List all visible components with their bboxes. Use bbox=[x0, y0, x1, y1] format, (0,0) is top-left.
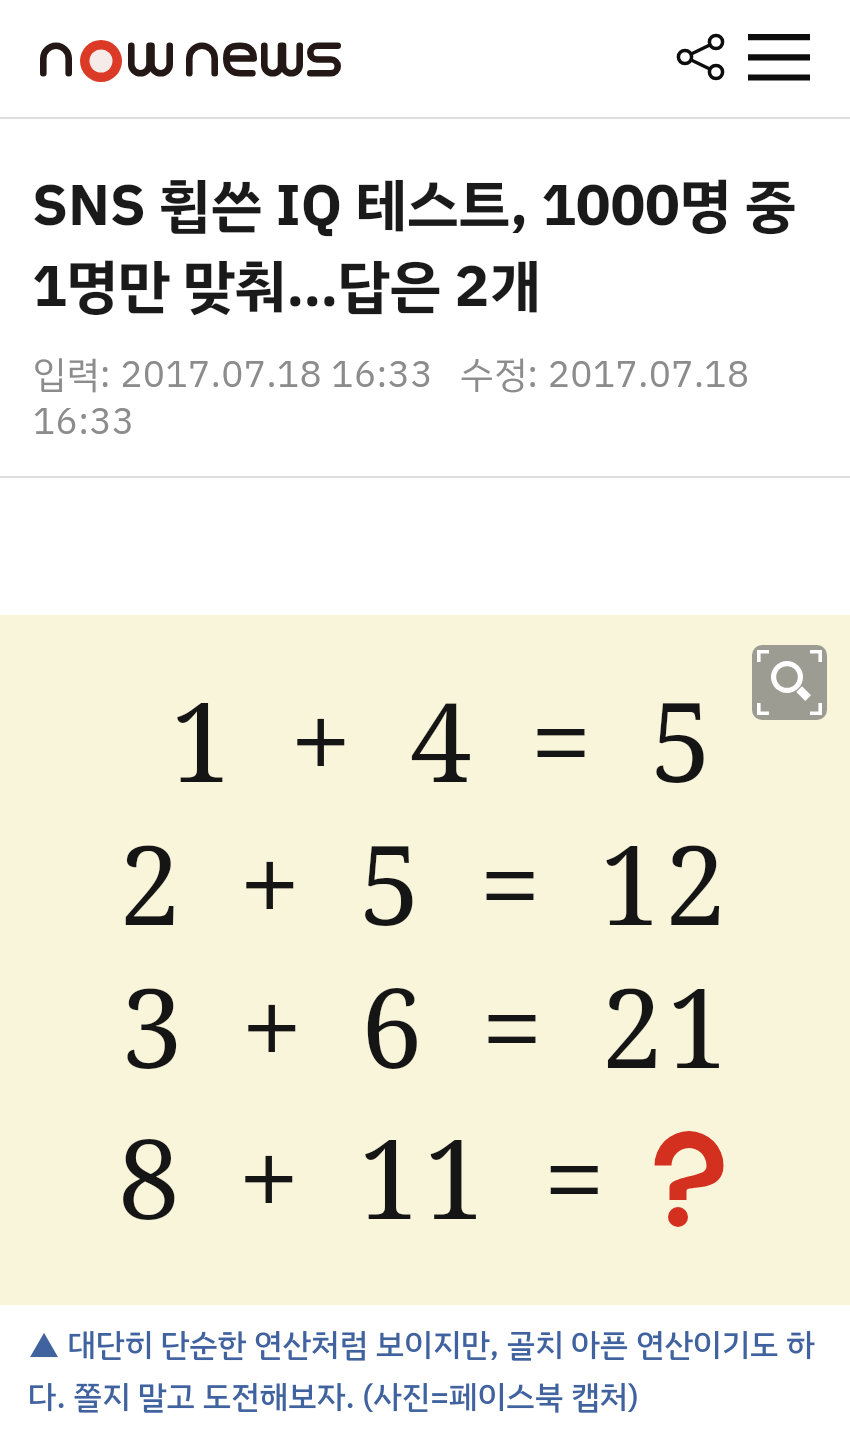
button[interactable]: nownews home bbox=[33, 30, 351, 88]
button[interactable]: Menu bbox=[733, 28, 825, 96]
staticText: 1 + 4 = 5 bbox=[170, 664, 716, 814]
staticText: SNS 휩쓴 IQ 테스트, 1000명 중 1명만 맞춰…답은 2개 bbox=[32, 162, 850, 330]
button[interactable]: Zoom image bbox=[752, 645, 827, 720]
staticText: 8 + 11 = bbox=[118, 1101, 609, 1251]
staticText: ▲ 대단히 단순한 연산처럼 보이지만, 골치 아픈 연산이기도 하 다. 쫄지… bbox=[28, 1321, 850, 1421]
button[interactable]: Article photo bbox=[0, 615, 850, 1305]
button[interactable]: Share bbox=[666, 29, 742, 85]
staticText: 2 + 5 = 12 bbox=[119, 807, 730, 957]
staticText: 입력: 2017.07.18 16:33 수정: 2017.07.18 16:3… bbox=[33, 347, 850, 449]
staticText: 3 + 6 = 21 bbox=[121, 950, 732, 1100]
